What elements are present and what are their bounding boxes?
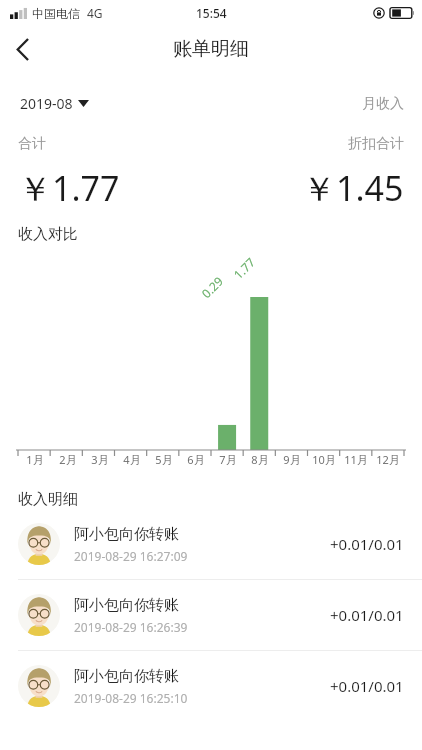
button[interactable]: Back [0,26,46,72]
staticText: 2019-08 [20,94,73,113]
staticText: 阿小包向你转账 [74,667,179,686]
staticText: 月收入 [362,95,404,113]
staticText: 4G [87,5,103,21]
staticText: 12月 [376,452,400,467]
staticText: 折扣合计 [348,135,404,153]
button[interactable]: 阿小包向你转账 [0,651,422,721]
staticText: 1.77 [230,254,258,282]
staticText: 1月 [26,452,44,467]
staticText: 15:54 [196,5,227,21]
staticText: 收入明细 [18,490,78,509]
staticText: +0.01/0.01 [330,534,404,554]
staticText: 6月 [187,452,205,467]
staticText: ￥1.77 [18,165,120,211]
staticText: 中国电信 [32,6,80,21]
button[interactable]: 阿小包向你转账 [0,509,422,579]
staticText: 2019-08-29 16:25:10 [74,690,188,706]
staticText: 3月 [91,452,109,467]
staticText: 账单明细 [173,37,249,61]
staticText: 10月 [312,452,336,467]
staticText: 5月 [155,452,173,467]
staticText: 阿小包向你转账 [74,525,179,544]
staticText: 0.29 [198,273,226,301]
button[interactable]: 阿小包向你转账 [0,580,422,650]
staticText: ￥1.45 [302,165,404,211]
staticText: 7月 [219,452,237,467]
staticText: 4月 [123,452,141,467]
staticText: 2019-08-29 16:26:39 [74,619,188,635]
staticText: 11月 [344,452,368,467]
staticText: +0.01/0.01 [330,676,404,696]
staticText: 8月 [251,452,269,467]
staticText: 阿小包向你转账 [74,596,179,615]
staticText: +0.01/0.01 [330,605,404,625]
staticText: 2月 [59,452,77,467]
staticText: 合计 [18,135,46,153]
staticText: 9月 [283,452,301,467]
staticText: 收入对比 [18,225,78,244]
button[interactable]: 2019-08 [18,92,91,115]
staticText: 2019-08-29 16:27:09 [74,548,188,564]
